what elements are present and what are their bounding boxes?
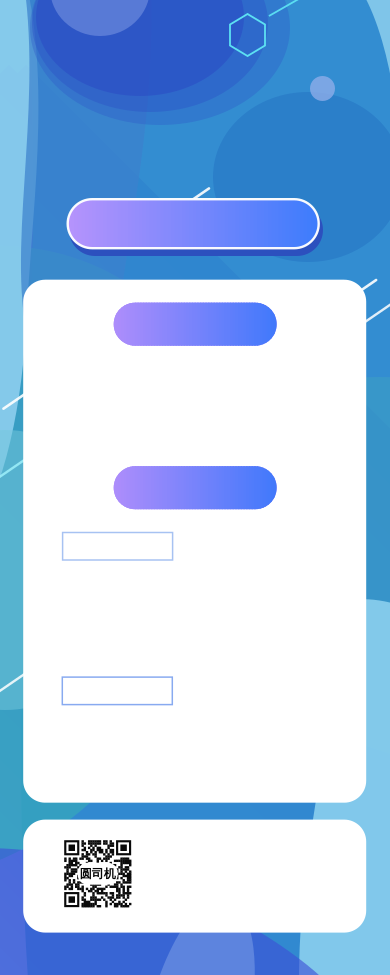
staticText: 圆司机	[80, 866, 116, 881]
button[interactable]: Action one	[114, 303, 277, 346]
button[interactable]: Action two	[114, 466, 277, 509]
button[interactable]: Field one	[63, 532, 173, 560]
button[interactable]: Primary action	[66, 198, 323, 258]
button[interactable]: Field two	[62, 677, 172, 705]
